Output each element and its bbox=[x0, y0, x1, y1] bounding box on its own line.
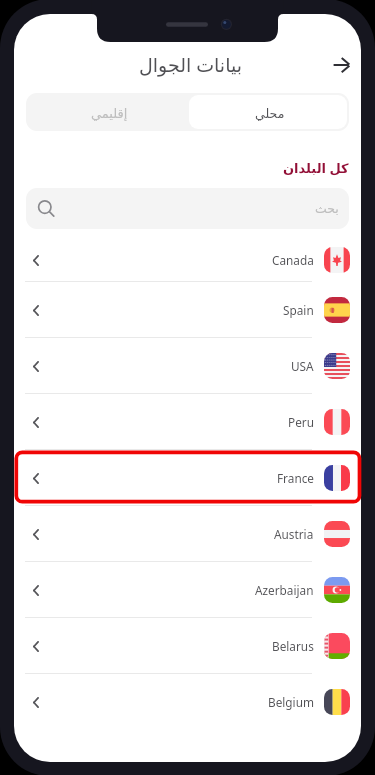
staticText: بيانات الجوال bbox=[139, 52, 242, 78]
staticText: Austria bbox=[274, 526, 314, 542]
button[interactable]: Belgium bbox=[14, 674, 361, 730]
staticText: Spain bbox=[283, 302, 314, 318]
staticText: France bbox=[277, 470, 314, 486]
staticText: Canada bbox=[272, 252, 314, 268]
staticText: USA bbox=[291, 358, 314, 374]
button[interactable]: France bbox=[14, 450, 361, 506]
button[interactable]: Peru bbox=[14, 394, 361, 450]
staticText: Belarus bbox=[272, 638, 314, 654]
button[interactable]: Azerbaijan bbox=[14, 562, 361, 618]
button[interactable]: Austria bbox=[14, 506, 361, 562]
button[interactable]: إقليمي bbox=[26, 93, 187, 131]
button[interactable]: USA bbox=[14, 338, 361, 394]
button[interactable]: بحث bbox=[26, 188, 349, 229]
staticText: كل البلدان bbox=[283, 159, 349, 177]
staticText: محلي bbox=[255, 106, 285, 121]
button[interactable]: Belarus bbox=[14, 618, 361, 674]
button[interactable]: Canada bbox=[14, 224, 361, 282]
staticText: بحث bbox=[315, 201, 339, 216]
staticText: Peru bbox=[288, 414, 314, 430]
staticText: إقليمي bbox=[91, 106, 128, 121]
button[interactable]: Back bbox=[321, 45, 361, 85]
button[interactable]: محلي bbox=[189, 95, 347, 129]
staticText: Belgium bbox=[268, 694, 314, 710]
button[interactable]: Spain bbox=[14, 282, 361, 338]
staticText: Azerbaijan bbox=[255, 582, 314, 598]
